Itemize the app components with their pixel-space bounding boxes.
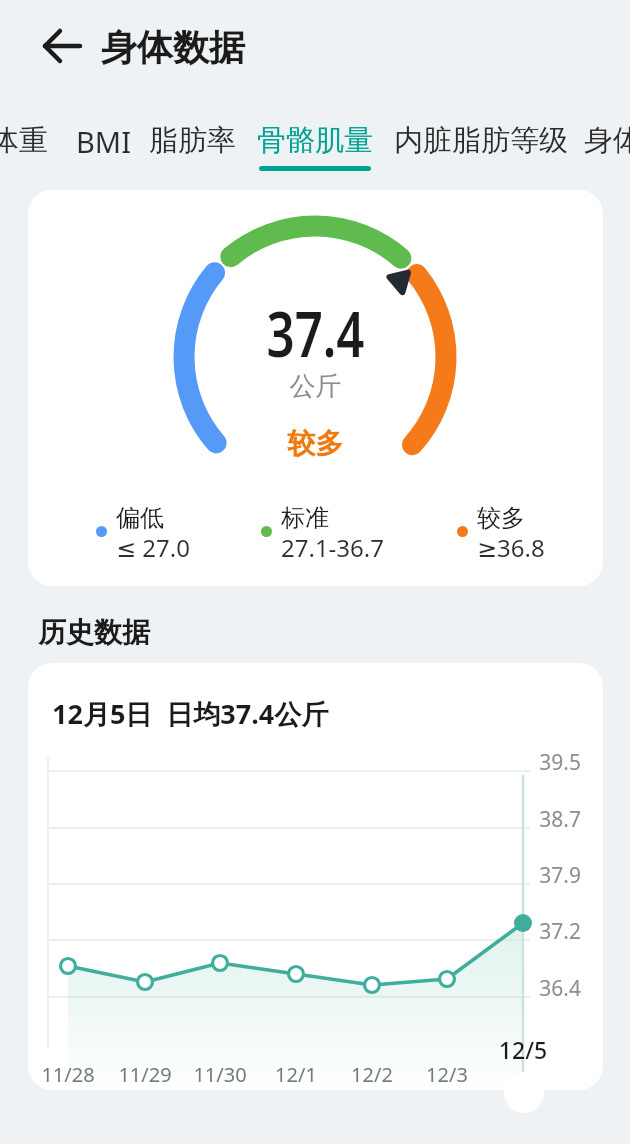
staticText: 内脏脂肪等级 bbox=[394, 122, 568, 159]
button[interactable] bbox=[38, 26, 88, 66]
staticText: 12/3 bbox=[412, 1061, 482, 1088]
staticText: ≥36.8 bbox=[477, 531, 545, 564]
button[interactable]: 脂肪率 bbox=[149, 122, 236, 171]
staticText: 36.4 bbox=[537, 974, 581, 1003]
staticText: ≤ 27.0 bbox=[116, 531, 190, 564]
staticText: 12月5日 日均37.4公斤 bbox=[52, 695, 329, 732]
button[interactable]: 12月5日 日均37.4公斤 bbox=[28, 663, 603, 1090]
staticText: 偏低 bbox=[116, 503, 164, 533]
button[interactable]: 骨骼肌量 bbox=[257, 122, 373, 171]
staticText: BMI bbox=[76, 122, 131, 161]
staticText: 历史数据 bbox=[38, 615, 150, 650]
staticText: 体重 bbox=[0, 122, 48, 159]
staticText: 身体成分 bbox=[584, 122, 630, 159]
button[interactable]: 内脏脂肪等级 bbox=[394, 122, 568, 171]
staticText: 11/30 bbox=[185, 1061, 255, 1088]
staticText: 37.2 bbox=[537, 917, 581, 946]
staticText: 较多 bbox=[28, 426, 603, 461]
staticText: 标准 bbox=[281, 503, 329, 533]
staticText: 骨骼肌量 bbox=[257, 122, 373, 159]
staticText: 38.7 bbox=[537, 805, 581, 834]
button[interactable] bbox=[504, 1073, 544, 1113]
staticText: 脂肪率 bbox=[149, 122, 236, 159]
staticText: 12/2 bbox=[337, 1061, 407, 1088]
staticText: 27.1-36.7 bbox=[281, 531, 384, 564]
staticText: 12/1 bbox=[261, 1061, 331, 1088]
button[interactable]: 身体成分 bbox=[584, 122, 630, 171]
staticText: 11/28 bbox=[33, 1061, 103, 1088]
staticText: 37.4 bbox=[91, 290, 540, 376]
staticText: 公斤 bbox=[28, 370, 603, 403]
staticText: 12/5 bbox=[488, 1034, 558, 1065]
staticText: 37.9 bbox=[537, 861, 581, 890]
staticText: 身体数据 bbox=[101, 25, 245, 70]
staticText: 39.5 bbox=[537, 748, 581, 777]
button[interactable]: BMI bbox=[76, 122, 131, 173]
staticText: 较多 bbox=[477, 503, 525, 533]
button[interactable]: 体重 bbox=[0, 122, 48, 171]
staticText: 11/29 bbox=[110, 1061, 180, 1088]
